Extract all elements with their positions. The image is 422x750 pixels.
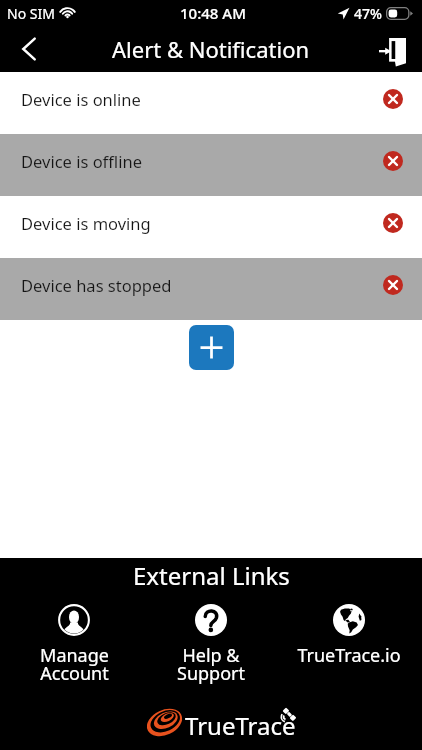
button[interactable]: Device has stopped <box>0 258 422 320</box>
staticText: No SIM <box>7 4 55 23</box>
staticText: 10:48 AM <box>180 3 246 23</box>
staticText: TrueTrace.io <box>297 643 401 668</box>
button[interactable]: TrueTrace.io <box>285 604 413 668</box>
button[interactable]: Add alert <box>189 325 234 370</box>
button[interactable]: Log out <box>376 26 422 72</box>
button[interactable]: Delete alert <box>380 86 406 112</box>
staticText: Help & Support <box>177 643 245 685</box>
staticText: Device is moving <box>21 212 151 234</box>
button[interactable]: Manage Account <box>10 604 138 685</box>
staticText: TrueTrace <box>185 709 296 741</box>
staticText: Manage Account <box>40 643 109 685</box>
staticText: 47% <box>354 4 382 23</box>
button[interactable]: Help & Support <box>147 604 275 685</box>
staticText: Device has stopped <box>21 274 172 296</box>
button[interactable]: Device is online <box>0 72 422 134</box>
staticText: External Links <box>133 559 290 592</box>
staticText: Device is online <box>21 88 141 110</box>
button[interactable]: Delete alert <box>380 210 406 236</box>
button[interactable]: Delete alert <box>380 148 406 174</box>
button[interactable]: Device is offline <box>0 134 422 196</box>
button[interactable]: Delete alert <box>380 272 406 298</box>
staticText: Alert & Notification <box>112 34 310 64</box>
staticText: Device is offline <box>21 150 142 172</box>
button[interactable]: Back <box>0 26 46 72</box>
button[interactable]: Device is moving <box>0 196 422 258</box>
